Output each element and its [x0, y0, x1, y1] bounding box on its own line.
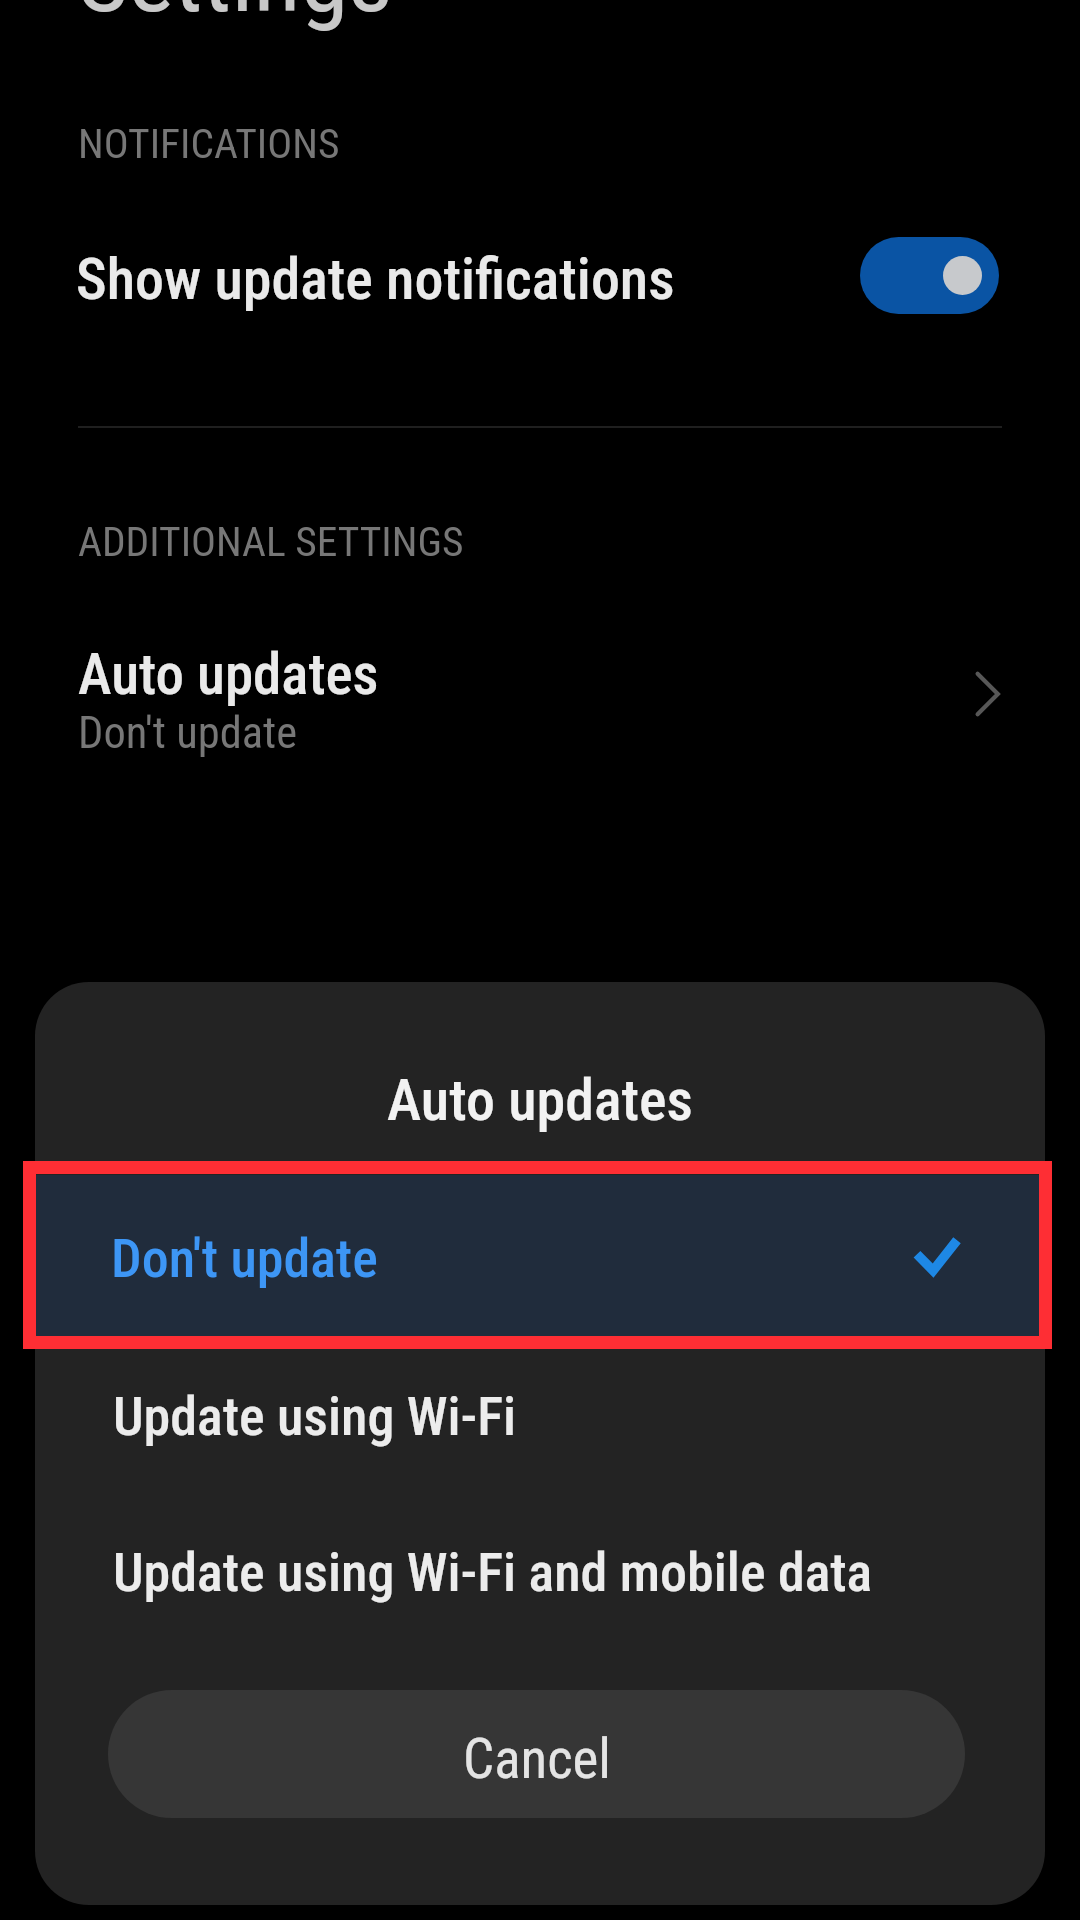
other: Open auto updates [975, 672, 1001, 716]
staticText: NOTIFICATIONS [78, 119, 340, 168]
staticText: Settings [78, 0, 393, 35]
staticText: Show update notifications [76, 245, 675, 313]
staticText: Auto updates [35, 1066, 1045, 1134]
button[interactable]: Don't update [35, 1175, 1045, 1336]
button[interactable]: Toggle show update notifications [860, 237, 999, 314]
staticText: ADDITIONAL SETTINGS [78, 517, 464, 566]
staticText: Don't update [111, 1227, 378, 1290]
staticText: Cancel [463, 1727, 611, 1791]
button[interactable]: Update using Wi-Fi and mobile data [35, 1492, 1045, 1652]
staticText: Update using Wi-Fi and mobile data [113, 1541, 873, 1604]
button[interactable]: Cancel [108, 1690, 965, 1818]
button[interactable]: Auto updates [0, 615, 1080, 775]
button[interactable]: Show update notifications [0, 215, 1080, 335]
other: Selected [914, 1237, 960, 1275]
staticText: Auto updates [78, 641, 379, 708]
staticText: Update using Wi-Fi [113, 1385, 517, 1448]
button[interactable]: Update using Wi-Fi [35, 1336, 1045, 1496]
staticText: Don't update [78, 707, 298, 759]
